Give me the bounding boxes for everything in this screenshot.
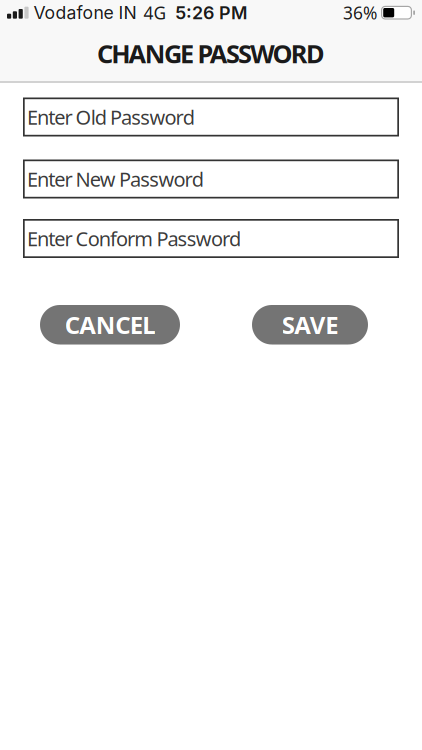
staticText: 36% <box>343 1 377 24</box>
staticText: 4G <box>144 1 167 24</box>
staticText: CANCEL <box>65 309 155 341</box>
staticText: Vodafone IN <box>34 2 137 23</box>
button[interactable]: Enter Conform Password <box>23 219 399 258</box>
staticText: Enter Conform Password <box>27 225 241 252</box>
staticText: Enter Old Password <box>27 104 195 130</box>
button[interactable]: SAVE <box>252 305 368 344</box>
staticText: Enter New Password <box>27 166 204 192</box>
staticText: 5:26 PM <box>175 2 247 23</box>
staticText: SAVE <box>282 309 338 341</box>
button[interactable]: Enter Old Password <box>23 97 399 136</box>
button[interactable]: CANCEL <box>40 305 180 344</box>
button[interactable]: Enter New Password <box>23 159 399 198</box>
staticText: CHANGE PASSWORD <box>97 37 325 70</box>
